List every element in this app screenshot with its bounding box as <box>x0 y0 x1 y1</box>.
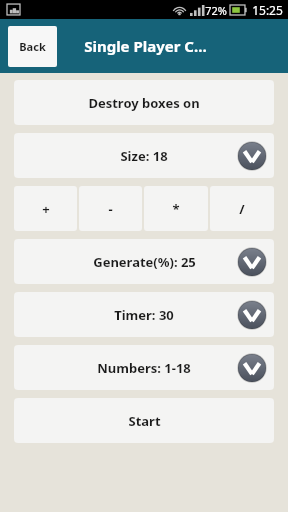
staticText: - <box>108 200 113 218</box>
button[interactable]: Timer: 30 <box>14 292 274 337</box>
button[interactable]: * <box>144 186 208 231</box>
other: Expand Timer: 30 <box>238 301 266 329</box>
staticText: Size: 18 <box>120 147 168 165</box>
staticText: * <box>172 200 180 218</box>
staticText: Timer: 30 <box>114 306 174 324</box>
staticText: Start <box>128 412 161 430</box>
button[interactable]: + <box>14 186 77 231</box>
staticText: / <box>239 200 245 218</box>
staticText: Back <box>19 39 46 54</box>
button[interactable]: - <box>79 186 142 231</box>
other: Expand Numbers: 1-18 <box>238 354 266 382</box>
other: Expand Size: 18 <box>238 142 266 170</box>
button[interactable]: Size: 18 <box>14 133 274 178</box>
button[interactable]: Numbers: 1-18 <box>14 345 274 390</box>
staticText: Numbers: 1-18 <box>97 359 191 377</box>
staticText: 72% <box>205 3 227 18</box>
staticText: Destroy boxes on <box>88 94 200 112</box>
button[interactable]: Start <box>14 398 274 443</box>
staticText: 15:25 <box>252 2 283 18</box>
other: Expand Generate(%): 25 <box>238 248 266 276</box>
button[interactable]: Generate(%): 25 <box>14 239 274 284</box>
staticText: Generate(%): 25 <box>93 253 196 271</box>
button[interactable]: Back <box>8 26 57 67</box>
staticText: Single Player C… <box>84 36 207 56</box>
button[interactable]: / <box>210 186 274 231</box>
staticText: + <box>42 200 50 218</box>
button[interactable]: Destroy boxes on <box>14 80 274 125</box>
